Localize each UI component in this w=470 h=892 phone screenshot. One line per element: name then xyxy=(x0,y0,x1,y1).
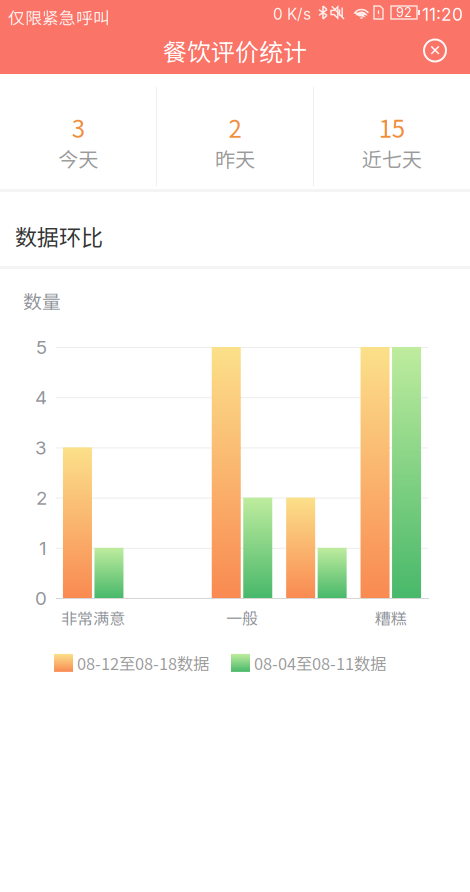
staticText: 11:20 xyxy=(422,4,463,25)
staticText: 5 xyxy=(36,336,47,359)
staticText: 昨天 xyxy=(215,144,255,173)
staticText: 数量 xyxy=(23,287,61,314)
staticText: 近七天 xyxy=(362,144,422,173)
staticText: 4 xyxy=(35,386,47,409)
staticText: 0 xyxy=(35,587,47,610)
staticText: 2 xyxy=(36,487,47,509)
staticText: 今天 xyxy=(58,144,98,173)
staticText: 糟糕 xyxy=(375,606,407,629)
button[interactable]: 08-12至08-18数据 xyxy=(54,651,209,675)
button[interactable]: 3 xyxy=(0,74,157,189)
staticText: 非常满意 xyxy=(61,606,125,629)
button[interactable]: 15 xyxy=(313,74,470,189)
staticText: 仅限紧急呼叫 xyxy=(8,5,110,29)
staticText: 3 xyxy=(35,436,47,459)
button[interactable]: 08-04至08-11数据 xyxy=(231,651,386,675)
staticText: 3 xyxy=(72,110,85,145)
staticText: 2 xyxy=(228,110,241,145)
staticText: 1 xyxy=(39,537,47,559)
staticText: 08-04至08-11数据 xyxy=(254,651,386,675)
staticText: ✕ xyxy=(429,42,441,59)
staticText: 15 xyxy=(379,110,405,145)
staticText: 92 xyxy=(396,5,412,20)
staticText: 数据环比 xyxy=(15,220,103,252)
button[interactable]: 2 xyxy=(157,74,313,189)
staticText: 一般 xyxy=(226,606,258,629)
staticText: 餐饮评价统计 xyxy=(163,33,307,68)
staticText: 08-12至08-18数据 xyxy=(77,651,209,675)
button[interactable]: Close xyxy=(413,28,457,72)
staticText: 0 K/s xyxy=(273,5,311,24)
